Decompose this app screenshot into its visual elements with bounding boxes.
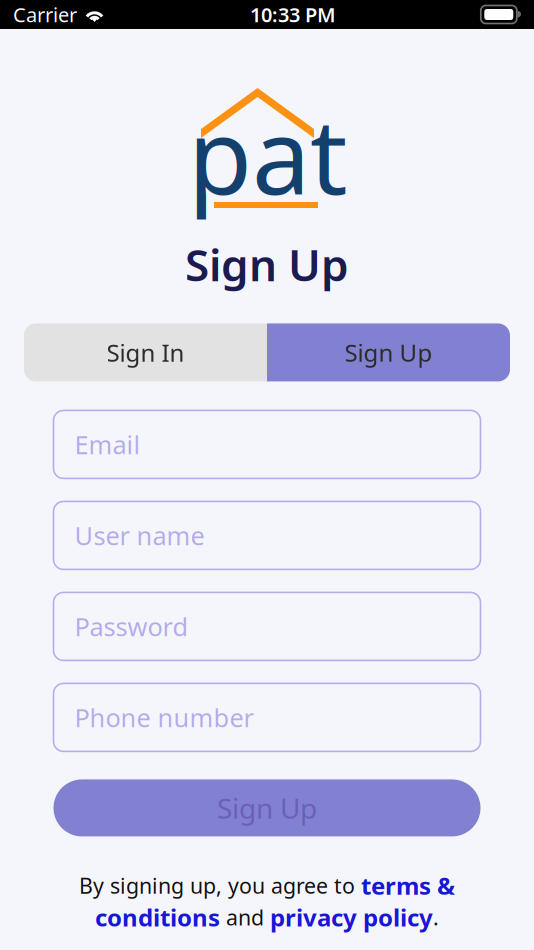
button[interactable]: conditions bbox=[95, 901, 220, 933]
staticText: Sign Up bbox=[217, 789, 317, 826]
staticText: User name bbox=[74, 519, 204, 552]
staticText: conditions bbox=[95, 901, 220, 933]
staticText: Sign Up bbox=[185, 235, 349, 293]
staticText: terms & bbox=[361, 869, 455, 901]
button[interactable]: terms & bbox=[361, 869, 455, 901]
button[interactable]: User name bbox=[53, 501, 480, 569]
button[interactable]: Phone number bbox=[53, 683, 480, 751]
staticText: privacy policy bbox=[270, 901, 433, 933]
staticText: Carrier bbox=[13, 1, 77, 28]
button[interactable]: Password bbox=[53, 592, 480, 660]
staticText: Phone number bbox=[74, 701, 253, 734]
button[interactable]: Sign In bbox=[24, 323, 267, 381]
staticText: Password bbox=[74, 610, 188, 643]
staticText: . bbox=[433, 903, 439, 931]
staticText: By signing up, you agree to bbox=[79, 871, 361, 899]
button[interactable]: privacy policy bbox=[270, 901, 433, 933]
staticText: Sign Up bbox=[344, 336, 432, 368]
staticText: and bbox=[220, 903, 270, 931]
staticText: Email bbox=[74, 428, 140, 461]
button[interactable]: Sign Up bbox=[53, 779, 480, 836]
staticText: 10:33 PM bbox=[250, 1, 336, 28]
staticText: pat bbox=[188, 85, 348, 223]
staticText: Sign In bbox=[106, 336, 184, 368]
button[interactable]: Email bbox=[53, 410, 480, 478]
button[interactable]: Sign Up bbox=[267, 323, 510, 381]
